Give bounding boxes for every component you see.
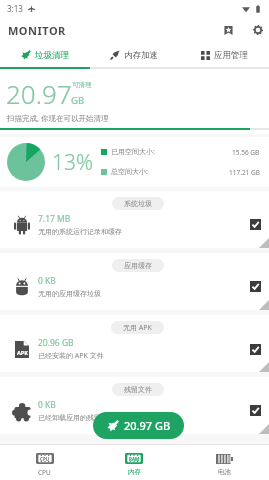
staticText: 应用管理 [214,50,248,61]
staticText: 内存加速 [124,50,158,61]
staticText: 系统垃圾 [124,199,152,208]
button[interactable]: 系统垃圾 [0,191,269,248]
button[interactable]: 无用 APK [0,315,269,372]
button[interactable]: RAM [89,445,179,480]
staticText: 0 KB [38,399,56,411]
staticText: 13% [52,148,94,177]
button[interactable]: 电池 [179,445,269,480]
staticText: 117.21 GB [229,168,260,177]
staticText: 总空间大小: [111,167,148,177]
staticText: 已经卸载应用的残留文件 [38,413,115,422]
staticText: 20.97 [6,76,72,111]
staticText: CPU [38,468,51,477]
staticText: 已用空间大小: [111,147,155,157]
staticText: 扫描完成, 你现在可以开始清理 [7,113,109,123]
staticText: 内存 [128,468,141,476]
staticText: 15.56 GB [232,148,260,157]
button[interactable]: Settings [247,19,269,41]
button[interactable]: 应用缓存 [0,253,269,310]
button[interactable]: 应用管理 [179,43,269,67]
button[interactable]: Select item [250,219,261,230]
staticText: MONITOR [8,23,66,38]
staticText: RAM [129,456,140,462]
staticText: 电池 [218,468,231,476]
button[interactable]: Bookmark [217,19,239,41]
staticText: CPU [40,456,50,462]
staticText: 0 KB [38,275,56,287]
staticText: 无用的系统运行记录和缓存 [38,227,122,236]
staticText: GB [71,94,85,107]
staticText: 应用缓存 [124,261,152,270]
staticText: 残留文件 [124,385,152,394]
button[interactable]: 残留文件 [0,377,269,434]
button[interactable]: 20.97 GB [93,412,184,439]
button[interactable]: Select item [250,281,261,292]
staticText: 可清理 [72,81,92,89]
staticText: 已经安装的 APK 文件 [38,351,104,361]
button[interactable]: CPU [0,445,89,480]
staticText: 20.96 GB [38,337,74,349]
staticText: 7.17 MB [38,213,71,225]
button[interactable]: 垃圾清理 [0,43,89,67]
staticText: 无用 APK [123,323,152,333]
staticText: 3:13 [7,3,23,14]
staticText: 无用的应用缓存垃圾 [38,289,101,298]
staticText: 垃圾清理 [35,50,69,61]
staticText: APK [17,349,28,356]
button[interactable]: Select item [250,405,261,416]
staticText: 20.97 GB [124,418,171,433]
button[interactable]: Select item [250,344,261,355]
button[interactable]: 内存加速 [89,43,179,67]
